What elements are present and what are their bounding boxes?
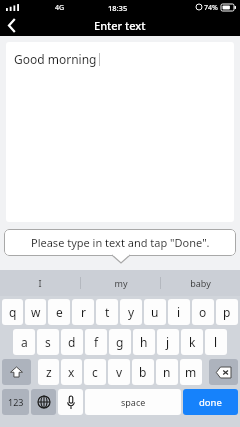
- staticText: done: [199, 396, 222, 409]
- button[interactable]: h: [133, 329, 155, 355]
- staticText: c: [92, 364, 98, 380]
- button[interactable]: v: [108, 359, 130, 385]
- button[interactable]: space: [85, 389, 181, 415]
- button[interactable]: i: [168, 299, 190, 325]
- staticText: p: [223, 304, 231, 320]
- staticText: Good morning: [14, 51, 97, 67]
- staticText: u: [151, 304, 159, 320]
- button[interactable]: s: [37, 329, 59, 355]
- staticText: r: [81, 304, 86, 320]
- button[interactable]: e: [48, 299, 70, 325]
- button[interactable]: g: [109, 329, 131, 355]
- button[interactable]: Back: [0, 14, 24, 36]
- button[interactable]: r: [72, 299, 94, 325]
- staticText: z: [46, 364, 52, 380]
- button[interactable]: f: [85, 329, 107, 355]
- staticText: my: [114, 277, 128, 289]
- button[interactable]: u: [144, 299, 166, 325]
- staticText: h: [140, 334, 148, 350]
- staticText: b: [139, 364, 147, 380]
- button[interactable]: w: [25, 299, 46, 325]
- button[interactable]: my: [81, 270, 160, 296]
- staticText: d: [68, 334, 76, 350]
- staticText: w: [31, 304, 41, 320]
- button[interactable]: q: [2, 299, 23, 325]
- button[interactable]: c: [84, 359, 106, 385]
- staticText: y: [128, 304, 135, 320]
- button[interactable]: o: [192, 299, 214, 325]
- button[interactable]: done: [183, 389, 238, 415]
- staticText: Enter text: [94, 18, 146, 33]
- staticText: k: [189, 334, 196, 350]
- button[interactable]: d: [61, 329, 83, 355]
- staticText: a: [21, 334, 28, 350]
- staticText: o: [199, 304, 207, 320]
- button[interactable]: Shift: [2, 359, 31, 385]
- staticText: m: [185, 364, 197, 380]
- button[interactable]: b: [132, 359, 154, 385]
- button[interactable]: x: [61, 359, 82, 385]
- button[interactable]: Please type in text and tap "Done".: [4, 229, 236, 256]
- staticText: t: [105, 304, 110, 320]
- staticText: 4G: [55, 3, 65, 13]
- staticText: q: [9, 304, 17, 320]
- staticText: j: [166, 334, 170, 350]
- staticText: I: [38, 277, 42, 289]
- button[interactable]: Change keyboard language: [31, 389, 56, 415]
- staticText: n: [163, 364, 171, 380]
- button[interactable]: m: [180, 359, 202, 385]
- staticText: l: [214, 334, 218, 350]
- staticText: v: [116, 364, 123, 380]
- staticText: 123: [8, 396, 24, 408]
- staticText: s: [45, 334, 51, 350]
- button[interactable]: Voice input: [58, 389, 83, 415]
- button[interactable]: t: [96, 299, 118, 325]
- staticText: f: [94, 334, 99, 350]
- button[interactable]: k: [181, 329, 203, 355]
- button[interactable]: n: [156, 359, 178, 385]
- staticText: e: [56, 304, 63, 320]
- staticText: 74%: [204, 3, 218, 13]
- staticText: 18:35: [108, 3, 128, 13]
- button[interactable]: baby: [161, 270, 240, 296]
- staticText: space: [121, 396, 146, 408]
- button[interactable]: Backspace: [209, 359, 238, 385]
- button[interactable]: I: [0, 270, 80, 296]
- button[interactable]: z: [38, 359, 59, 385]
- button[interactable]: a: [13, 329, 35, 355]
- staticText: g: [116, 334, 124, 350]
- staticText: i: [177, 304, 181, 320]
- button[interactable]: y: [120, 299, 142, 325]
- button[interactable]: j: [157, 329, 179, 355]
- staticText: baby: [190, 277, 211, 289]
- button[interactable]: 123: [2, 389, 29, 415]
- button[interactable]: Good morning: [6, 42, 234, 222]
- staticText: Please type in text and tap "Done".: [31, 235, 210, 250]
- staticText: x: [68, 364, 75, 380]
- button[interactable]: l: [205, 329, 227, 355]
- button[interactable]: p: [216, 299, 238, 325]
